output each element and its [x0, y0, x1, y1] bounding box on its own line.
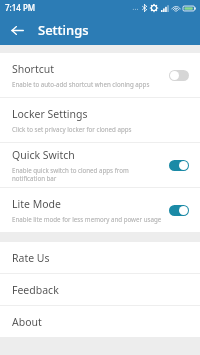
- button[interactable]: Lite Mode: [0, 188, 200, 232]
- staticText: About: [12, 315, 42, 329]
- staticText: Lite Mode: [12, 197, 61, 211]
- staticText: Enable lite mode for less memory and pow…: [12, 215, 162, 223]
- button[interactable]: On: [169, 160, 189, 171]
- button[interactable]: Rate Us: [0, 242, 200, 273]
- staticText: Quick Switch: [12, 148, 75, 162]
- staticText: Click to set privacy locker for cloned a…: [12, 125, 132, 133]
- staticText: 7:14 PM: [5, 2, 36, 13]
- staticText: Enable quick switch to cloned apps from …: [12, 166, 163, 182]
- staticText: Feedback: [12, 283, 59, 297]
- button[interactable]: On: [169, 205, 189, 216]
- button[interactable]: About: [0, 306, 200, 337]
- staticText: Shortcut: [12, 62, 55, 76]
- button[interactable]: Off: [169, 70, 189, 81]
- button[interactable]: Quick Switch: [0, 143, 200, 187]
- staticText: Settings: [38, 21, 89, 39]
- button[interactable]: Feedback: [0, 274, 200, 305]
- staticText: Locker Settings: [12, 107, 88, 121]
- button[interactable]: Shortcut: [0, 53, 200, 97]
- button[interactable]: Locker Settings: [0, 98, 200, 142]
- staticText: Rate Us: [12, 251, 50, 265]
- staticText: Enable to auto-add shortcut when cloning…: [12, 80, 150, 88]
- button[interactable]: Back: [5, 18, 29, 42]
